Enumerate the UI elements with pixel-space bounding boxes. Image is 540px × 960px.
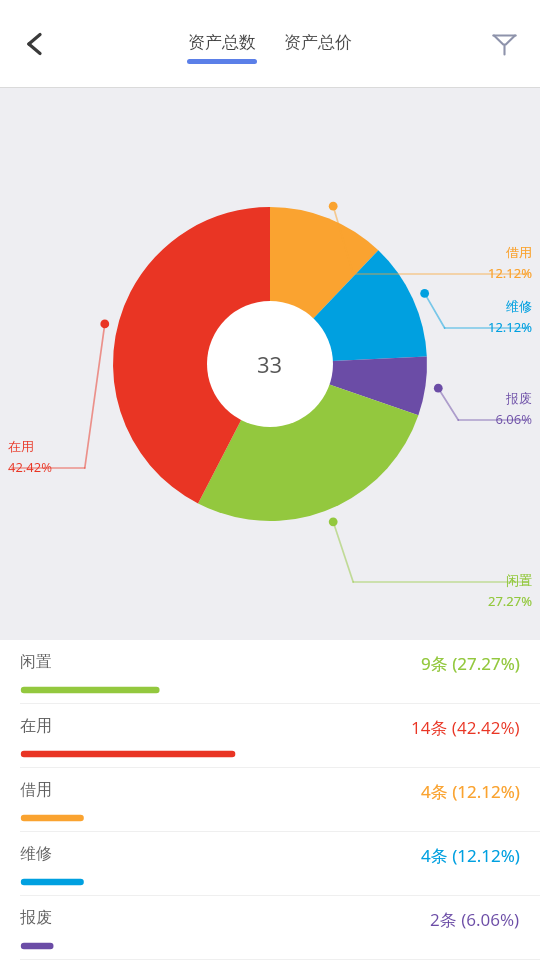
- staticText: 资产总数: [188, 32, 256, 53]
- staticText: 42.42%: [8, 458, 53, 476]
- staticText: 借用: [506, 244, 532, 260]
- staticText: 9条 (27.27%): [421, 652, 520, 675]
- staticText: 闲置: [20, 652, 52, 672]
- button[interactable]: 闲置: [0, 640, 540, 704]
- staticText: 闲置: [506, 572, 532, 588]
- staticText: 维修: [20, 844, 52, 864]
- staticText: 4条 (12.12%): [421, 780, 520, 803]
- staticText: 12.12%: [487, 318, 532, 336]
- button[interactable]: 在用: [0, 704, 540, 768]
- staticText: 27.27%: [487, 592, 532, 610]
- staticText: 4条 (12.12%): [421, 844, 520, 867]
- staticText: 在用: [20, 716, 52, 736]
- staticText: 在用: [8, 438, 34, 454]
- staticText: 33: [257, 349, 283, 379]
- button[interactable]: 资产总价: [280, 32, 356, 64]
- button[interactable]: 维修: [0, 832, 540, 896]
- staticText: 报废: [506, 390, 532, 406]
- staticText: 报废: [20, 908, 52, 928]
- button[interactable]: 资产总数: [184, 32, 260, 64]
- staticText: 14条 (42.42%): [411, 716, 520, 739]
- button[interactable]: Filter: [476, 16, 532, 72]
- staticText: 资产总价: [284, 32, 352, 53]
- staticText: 6.06%: [495, 410, 532, 428]
- staticText: 12.12%: [487, 264, 532, 282]
- button[interactable]: 报废: [0, 896, 540, 960]
- button[interactable]: 借用: [0, 768, 540, 832]
- staticText: 2条 (6.06%): [430, 908, 520, 931]
- staticText: 借用: [20, 780, 52, 800]
- staticText: 维修: [506, 298, 532, 314]
- button[interactable]: Back: [6, 15, 64, 73]
